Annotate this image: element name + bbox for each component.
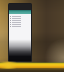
button[interactable] (9, 19, 31, 21)
button[interactable] (9, 17, 31, 19)
button[interactable] (9, 25, 31, 27)
button[interactable] (9, 10, 31, 14)
button[interactable] (9, 21, 31, 23)
button[interactable] (9, 23, 31, 25)
button[interactable] (9, 15, 31, 17)
